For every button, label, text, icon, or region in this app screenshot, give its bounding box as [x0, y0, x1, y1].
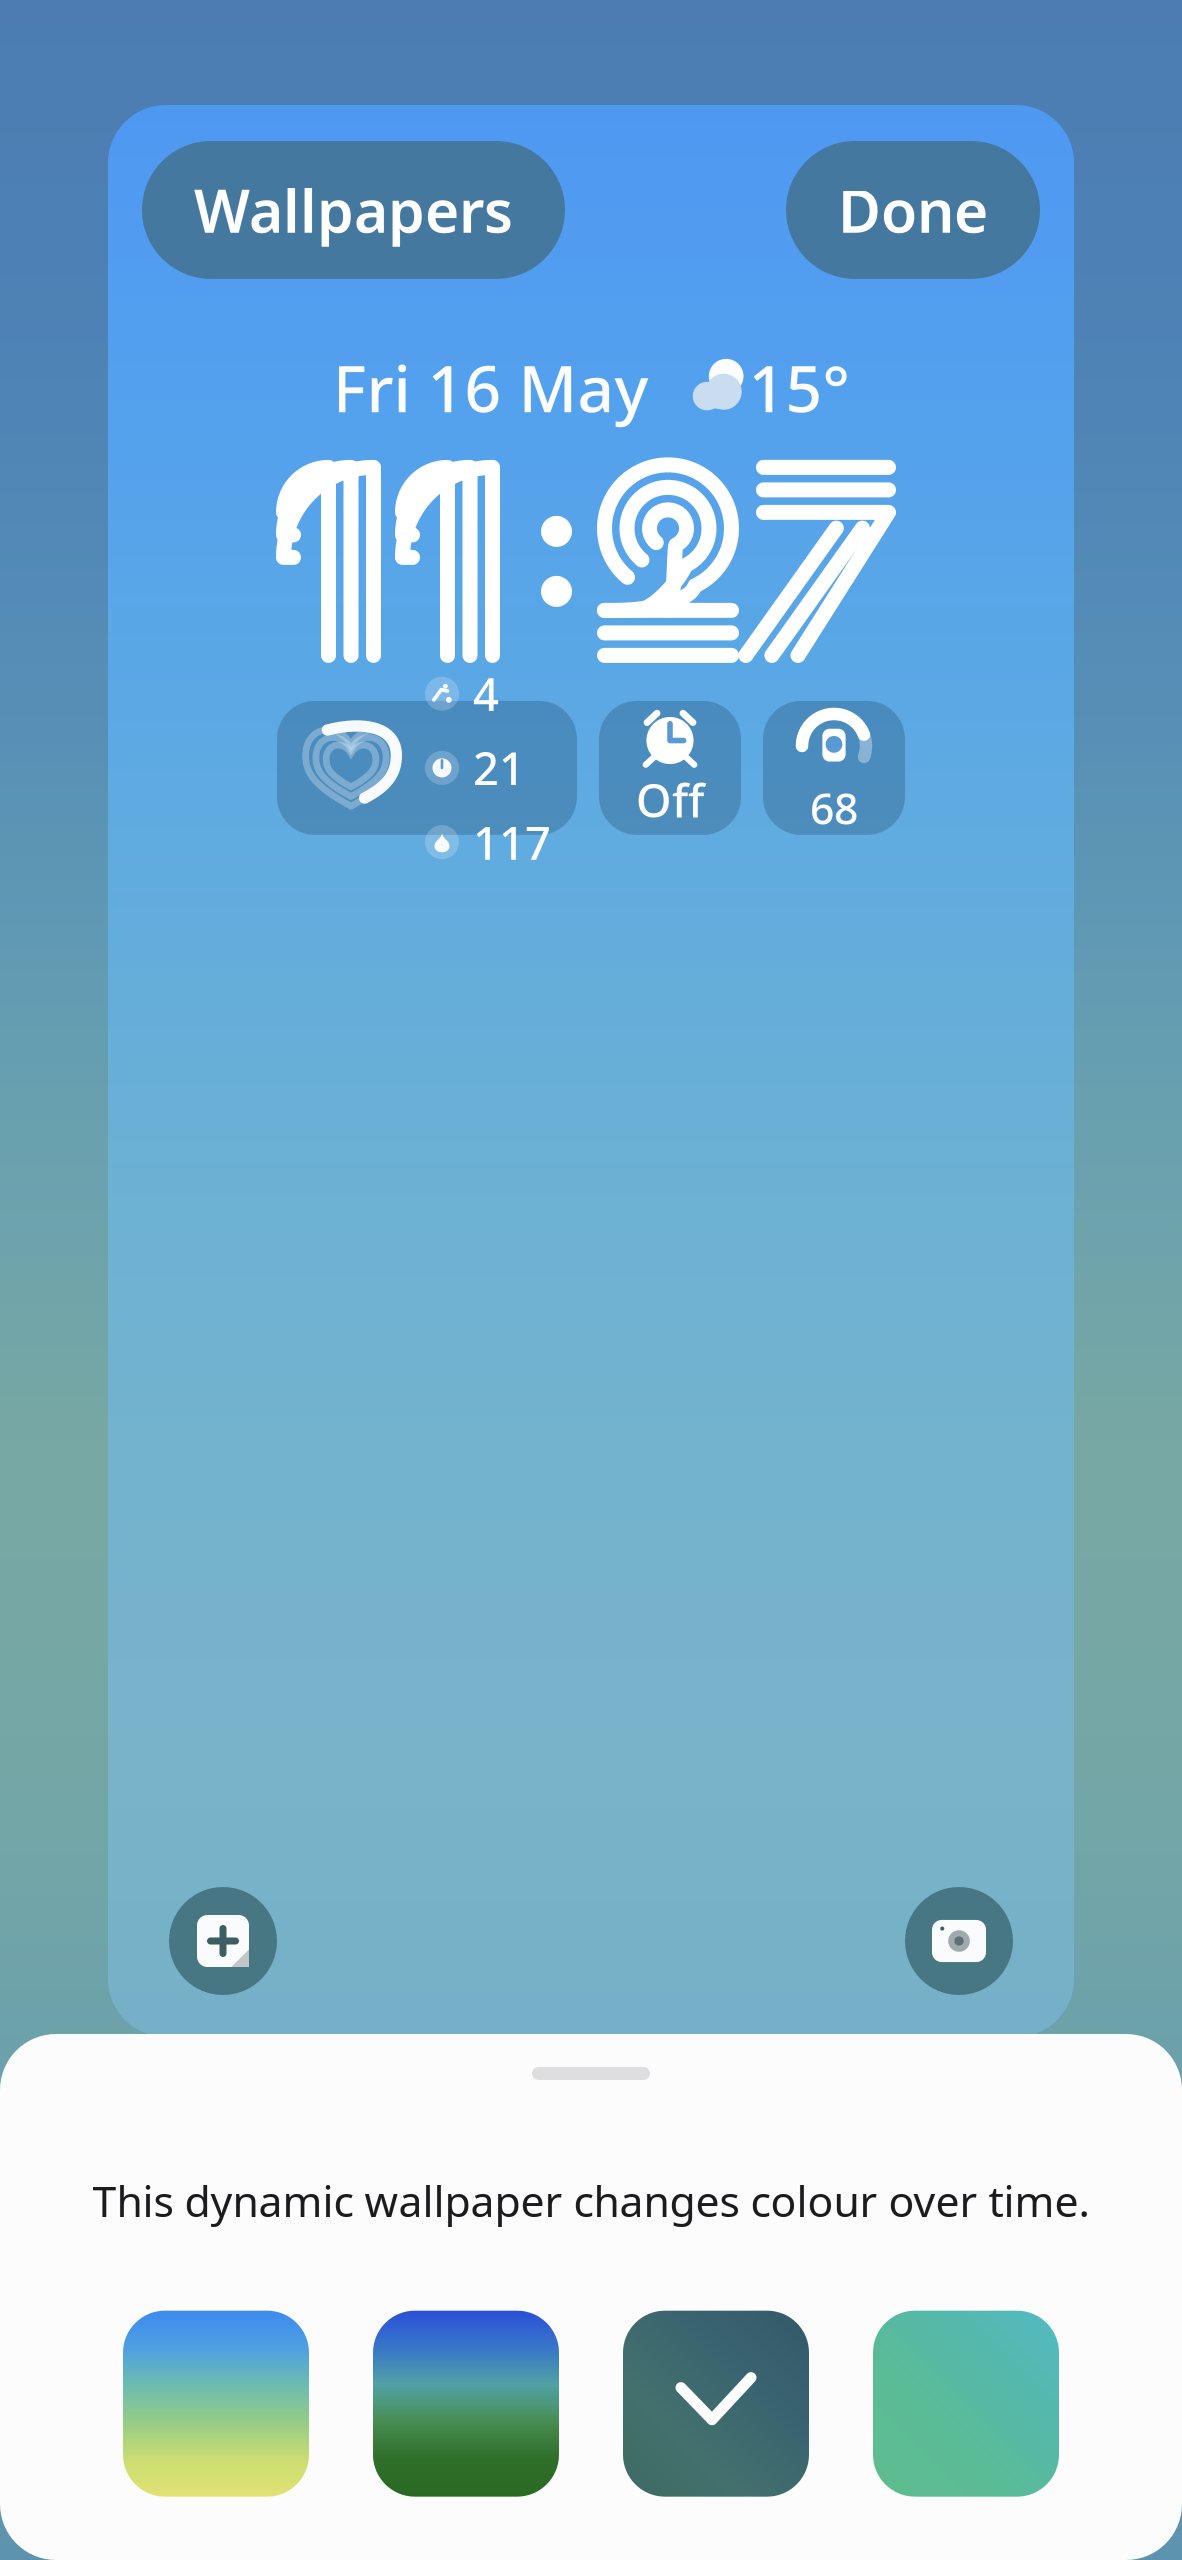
button[interactable]: Selected wallpaper variant [623, 2311, 809, 2497]
button[interactable]: Wallpaper variant [873, 2311, 1059, 2497]
staticText: 21 [473, 738, 525, 798]
button[interactable]: Done [786, 141, 1040, 279]
staticText: 4 [473, 664, 499, 724]
staticText: Done [838, 171, 988, 249]
staticText: Wallpapers [194, 171, 513, 249]
staticText: 117 [473, 812, 551, 872]
button[interactable]: Camera [905, 1887, 1013, 1995]
staticText: 68 [810, 780, 858, 836]
staticText: 15° [748, 345, 849, 430]
button[interactable]: Add note [169, 1887, 277, 1995]
staticText: Off [636, 770, 704, 830]
staticText: Fri 16 May [332, 345, 648, 430]
staticText: This dynamic wallpaper changes colour ov… [92, 2172, 1089, 2229]
button[interactable]: Wallpaper variant [123, 2311, 309, 2497]
button[interactable]: Wallpaper variant [373, 2311, 559, 2497]
button[interactable]: Wallpapers [142, 141, 565, 279]
